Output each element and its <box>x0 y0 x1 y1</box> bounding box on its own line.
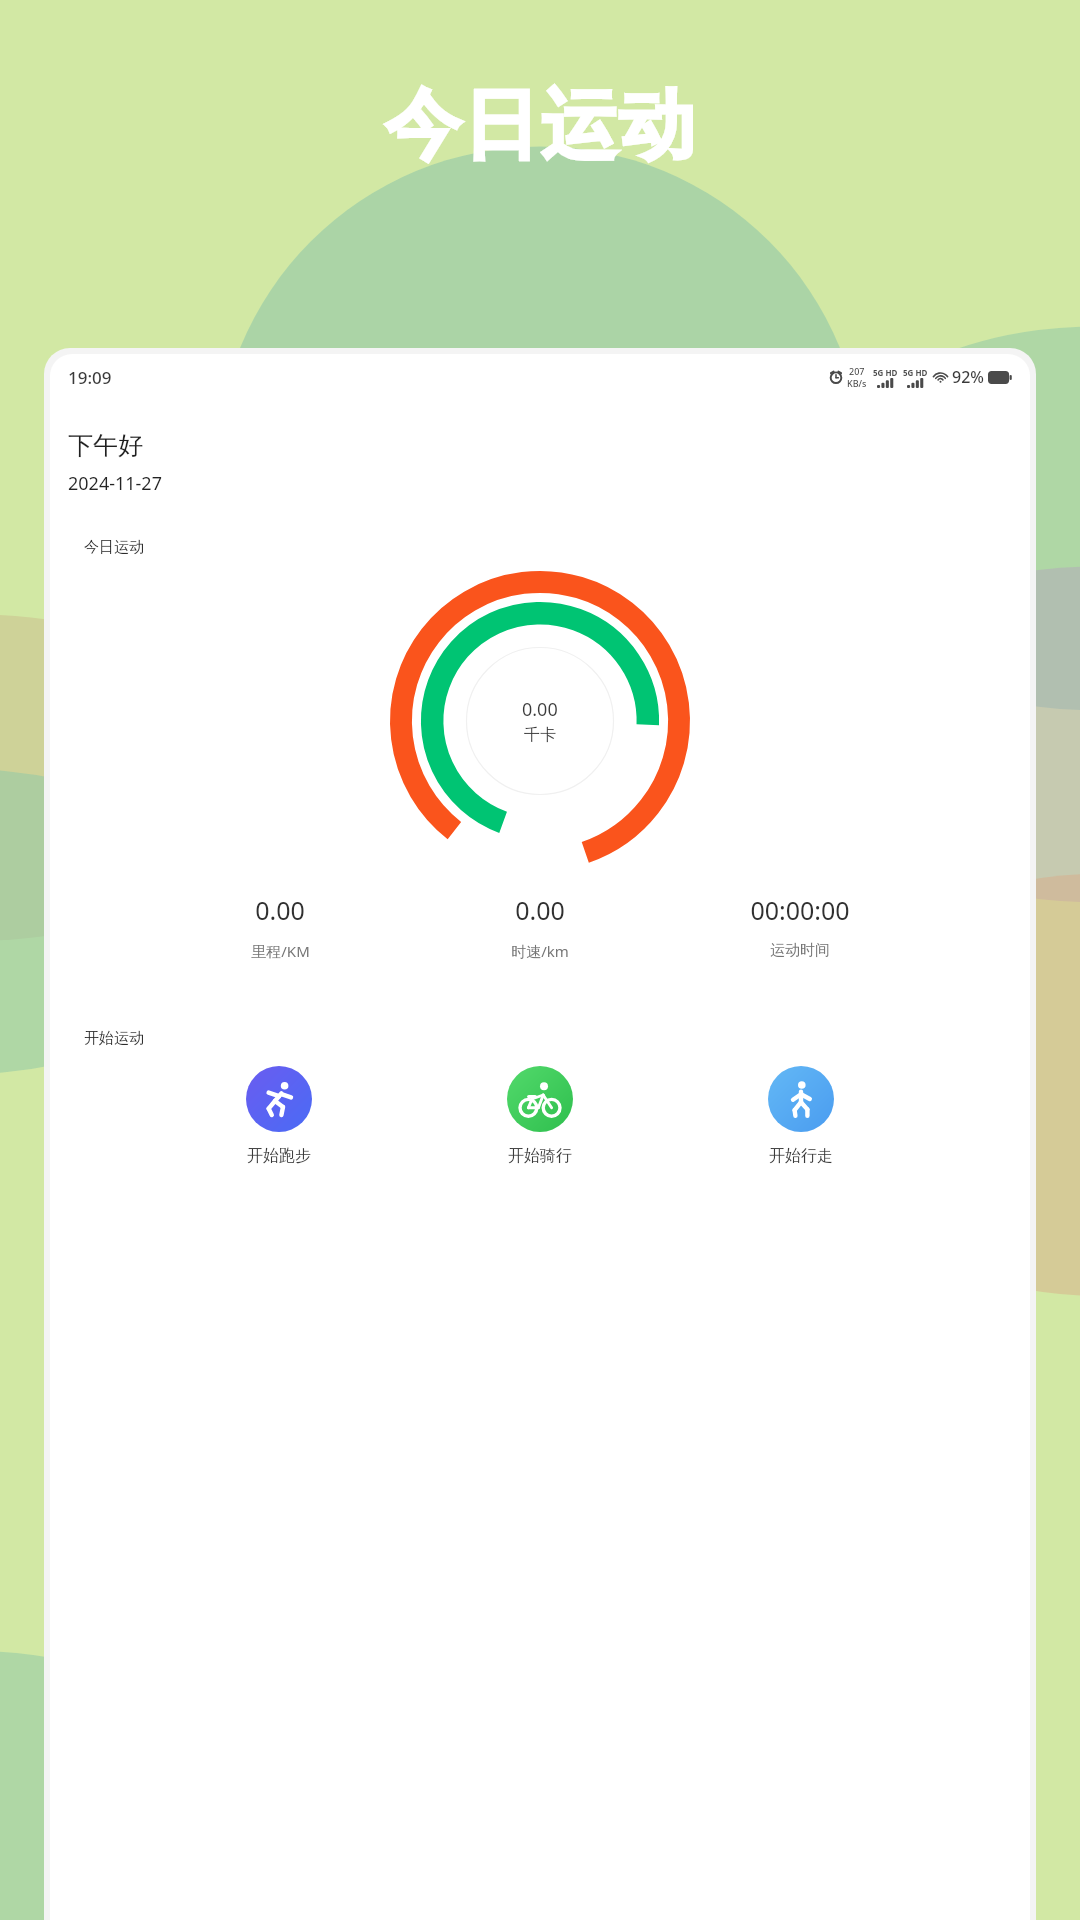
button[interactable]: Start cycling <box>480 1062 600 1170</box>
button[interactable]: Start walking <box>741 1062 861 1170</box>
staticText: KB/s <box>847 377 867 389</box>
staticText: 今日运动 <box>84 538 144 557</box>
staticText: 今日运动 <box>384 78 696 174</box>
button[interactable]: 今日运动 <box>68 518 1012 987</box>
button[interactable]: Start running <box>219 1062 339 1170</box>
staticText: 00:00:00 <box>750 893 850 927</box>
staticText: 时速/km <box>511 941 569 961</box>
staticText: 0.00 <box>515 893 565 927</box>
staticText: 207 <box>849 365 865 377</box>
staticText: 0.00 <box>522 697 558 722</box>
staticText: 19:09 <box>68 366 112 389</box>
staticText: 下午好 <box>68 430 143 461</box>
staticText: 5G HD <box>873 367 898 378</box>
staticText: 2024-11-27 <box>68 471 162 496</box>
staticText: 运动时间 <box>770 941 830 960</box>
staticText: 0.00 <box>255 893 305 927</box>
staticText: 92% <box>952 366 984 388</box>
staticText: 开始骑行 <box>508 1146 572 1166</box>
staticText: 千卡 <box>524 725 556 745</box>
staticText: 开始运动 <box>84 1029 144 1048</box>
staticText: 里程/KM <box>251 941 310 961</box>
staticText: 5G HD <box>903 367 928 378</box>
staticText: 开始跑步 <box>247 1146 311 1166</box>
staticText: 开始行走 <box>769 1146 833 1166</box>
